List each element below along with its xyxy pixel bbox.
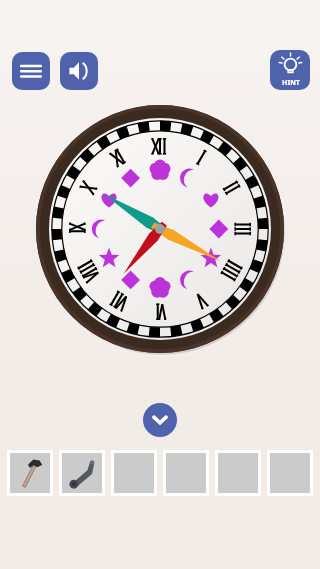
button[interactable]: Sound <box>60 52 98 90</box>
button[interactable]: Inventory slot 1 <box>10 453 50 493</box>
staticText: HINT <box>282 78 300 88</box>
button[interactable]: HINT <box>270 50 310 90</box>
button[interactable]: Inventory slot 2 <box>62 453 102 493</box>
button[interactable]: Scroll down <box>143 403 177 437</box>
button[interactable]: Clock <box>36 105 284 353</box>
button[interactable]: Menu <box>12 52 50 90</box>
